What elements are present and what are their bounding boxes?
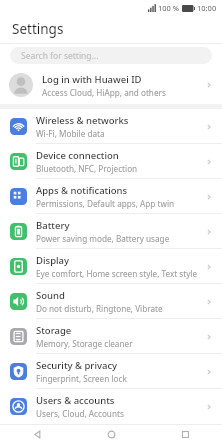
other: Open (204, 227, 214, 237)
other: Open (204, 80, 214, 90)
other: Open (204, 402, 214, 412)
button[interactable]: Log in with Huawei ID (0, 66, 222, 104)
button[interactable]: Security & privacy (0, 354, 222, 389)
staticText: Memory, Storage cleaner (36, 338, 133, 349)
button[interactable]: Display (0, 249, 222, 284)
staticText: Wi-Fi, Mobile data (36, 128, 105, 139)
other: Open (204, 157, 214, 167)
staticText: Storage (36, 324, 72, 337)
other: Open (204, 367, 214, 377)
button[interactable]: Sound (0, 284, 222, 319)
button[interactable]: Storage (0, 319, 222, 354)
staticText: 100 % (158, 3, 180, 13)
staticText: Power saving mode, Battery usage (36, 233, 170, 244)
button[interactable]: Back (0, 425, 74, 444)
button[interactable]: Recents (148, 425, 222, 444)
staticText: Users & accounts (36, 394, 115, 407)
button[interactable]: Apps & notifications (0, 179, 222, 214)
button[interactable]: Wireless & networks (0, 109, 222, 144)
staticText: Log in with Huawei ID (42, 73, 142, 86)
staticText: Do not disturb, Ringtone, Vibrate (36, 303, 163, 314)
other: Open (204, 262, 214, 272)
button[interactable]: Battery (0, 214, 222, 249)
staticText: Fingerprint, Screen lock (36, 373, 127, 384)
button[interactable]: Home (74, 425, 148, 444)
staticText: Access Cloud, HiApp, and others (42, 87, 166, 98)
other: Open (204, 297, 214, 307)
staticText: Permissions, Default apps, App twin (36, 198, 175, 209)
staticText: Apps & notifications (36, 184, 128, 197)
staticText: Sound (36, 289, 65, 302)
staticText: Wireless & networks (36, 114, 129, 127)
staticText: 10:00 (197, 3, 217, 13)
staticText: Settings (12, 20, 64, 38)
staticText: Users, Cloud, Accounts (36, 408, 124, 419)
button[interactable]: Device connection (0, 144, 222, 179)
staticText: Bluetooth, NFC, Projection (36, 163, 138, 174)
button[interactable]: Users & accounts (0, 389, 222, 424)
staticText: Eye comfort, Home screen style, Text sty… (36, 268, 198, 279)
other: Open (204, 192, 214, 202)
staticText: Security & privacy (36, 359, 118, 372)
staticText: Search for setting... (21, 50, 99, 62)
other: Open (204, 122, 214, 132)
staticText: Display (36, 254, 70, 267)
staticText: Device connection (36, 149, 119, 162)
button[interactable]: Search for setting (10, 47, 212, 64)
other: Open (204, 332, 214, 342)
staticText: Battery (36, 219, 70, 232)
